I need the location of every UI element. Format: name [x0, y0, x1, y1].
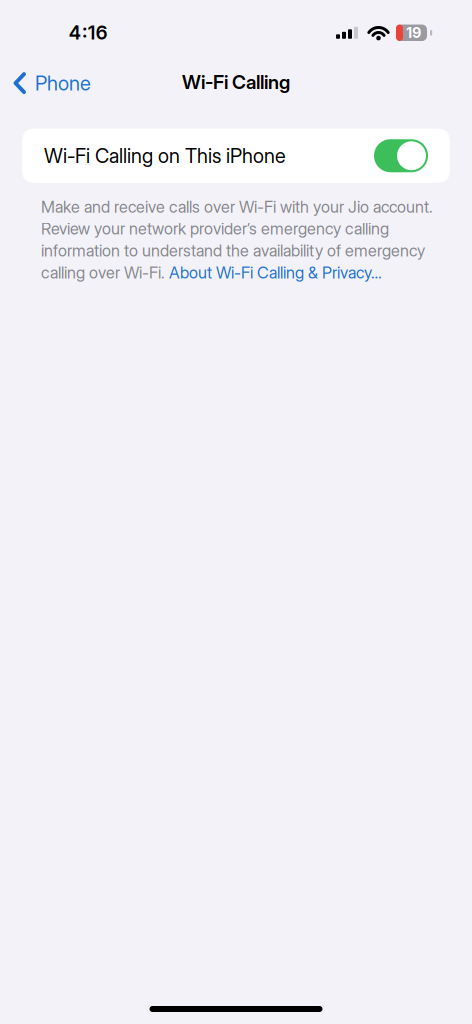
staticText: 4:16 — [68, 21, 107, 44]
staticText: About Wi-Fi Calling & Privacy… — [169, 263, 382, 282]
staticText: Wi-Fi Calling — [182, 70, 290, 94]
staticText: 19 — [406, 24, 421, 42]
staticText: calling over Wi-Fi. — [41, 263, 169, 282]
staticText: Make and receive calls over Wi-Fi with y… — [41, 197, 433, 260]
button[interactable]: About Wi-Fi Calling & Privacy… — [169, 263, 382, 282]
staticText: Phone — [35, 71, 91, 95]
button[interactable]: Wi-Fi Calling on This iPhone — [22, 128, 450, 183]
staticText: Wi-Fi Calling on This iPhone — [44, 144, 286, 168]
button[interactable]: Back — [0, 64, 91, 95]
